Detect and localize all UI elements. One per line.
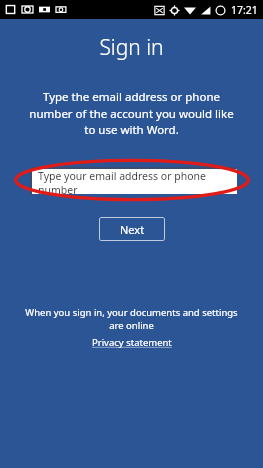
button[interactable]: Next: [99, 217, 165, 241]
button[interactable]: Type your email address or phone number: [32, 169, 237, 194]
staticText: When you sign in, your documents and set…: [12, 306, 251, 332]
staticText: Next: [120, 222, 145, 237]
staticText: Type your email address or phone number: [38, 169, 237, 194]
staticText: Privacy statement: [92, 336, 172, 349]
staticText: Sign in: [0, 33, 263, 62]
button[interactable]: Privacy statement: [88, 335, 176, 350]
staticText: 17:21: [231, 3, 258, 17]
staticText: Type the email address or phone number o…: [16, 89, 247, 137]
